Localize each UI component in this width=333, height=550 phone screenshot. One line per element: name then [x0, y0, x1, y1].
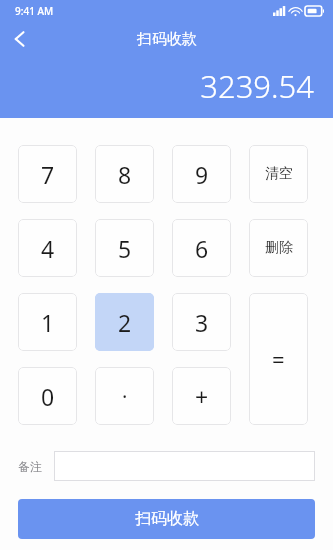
- button[interactable]: 7: [18, 145, 77, 203]
- button[interactable]: 删除: [249, 219, 308, 277]
- staticText: 6: [195, 233, 209, 264]
- button[interactable]: 8: [95, 145, 154, 203]
- button[interactable]: 9: [172, 145, 231, 203]
- staticText: 扫码收款: [135, 509, 199, 529]
- staticText: 3239.54: [0, 65, 314, 107]
- staticText: 5: [118, 233, 132, 264]
- staticText: 清空: [265, 165, 293, 183]
- staticText: 备注: [18, 459, 42, 474]
- staticText: =: [272, 344, 285, 374]
- button[interactable]: Back: [0, 21, 38, 57]
- staticText: 9:41 AM: [15, 4, 54, 18]
- button[interactable]: ·: [95, 367, 154, 425]
- staticText: ·: [122, 383, 128, 410]
- button[interactable]: 5: [95, 219, 154, 277]
- button[interactable]: 2: [95, 293, 154, 351]
- staticText: 8: [118, 159, 132, 190]
- button[interactable]: =: [249, 293, 308, 425]
- staticText: 扫码收款: [137, 30, 197, 49]
- staticText: 删除: [265, 239, 293, 257]
- staticText: 0: [41, 381, 55, 412]
- staticText: 7: [41, 159, 55, 190]
- button[interactable]: 1: [18, 293, 77, 351]
- staticText: 9: [195, 159, 209, 190]
- staticText: 2: [118, 307, 132, 338]
- button[interactable]: 清空: [249, 145, 308, 203]
- button[interactable]: 4: [18, 219, 77, 277]
- button[interactable]: 扫码收款: [18, 499, 315, 539]
- staticText: +: [195, 381, 209, 412]
- button[interactable]: 6: [172, 219, 231, 277]
- staticText: 4: [41, 233, 55, 264]
- button[interactable]: +: [172, 367, 231, 425]
- button[interactable]: 0: [18, 367, 77, 425]
- button[interactable]: [54, 451, 315, 481]
- staticText: 3: [195, 307, 209, 338]
- staticText: 1: [41, 307, 55, 338]
- button[interactable]: 3: [172, 293, 231, 351]
